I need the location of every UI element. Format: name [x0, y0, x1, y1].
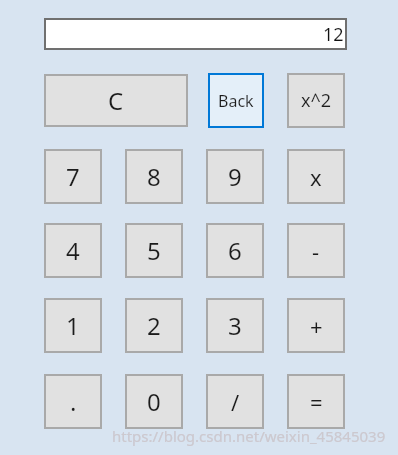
staticText: 0 [147, 385, 161, 418]
button[interactable]: + [287, 298, 345, 353]
button[interactable]: / [206, 374, 264, 429]
staticText: x^2 [301, 88, 332, 113]
staticText: 9 [228, 160, 242, 193]
button[interactable]: x [287, 149, 345, 204]
staticText: 12 [323, 22, 344, 47]
staticText: Back [218, 90, 254, 112]
staticText: + [310, 311, 323, 341]
staticText: 6 [228, 234, 242, 267]
button[interactable]: 9 [206, 149, 264, 204]
staticText: 2 [147, 309, 161, 342]
staticText: https://blog.csdn.net/weixin_45845039 [112, 426, 386, 446]
staticText: x [310, 162, 322, 192]
button[interactable]: 7 [44, 149, 102, 204]
button[interactable]: x^2 [287, 73, 345, 128]
staticText: / [231, 387, 240, 417]
button[interactable]: 1 [44, 298, 102, 353]
button[interactable]: 0 [125, 374, 183, 429]
staticText: C [108, 84, 124, 117]
staticText: 1 [66, 309, 80, 342]
staticText: - [312, 236, 320, 266]
button[interactable]: - [287, 223, 345, 278]
button[interactable]: 2 [125, 298, 183, 353]
staticText: 8 [147, 160, 161, 193]
button[interactable]: 4 [44, 223, 102, 278]
button[interactable]: 5 [125, 223, 183, 278]
button[interactable]: C [44, 74, 188, 127]
button[interactable]: 6 [206, 223, 264, 278]
button[interactable]: = [287, 374, 345, 429]
staticText: . [70, 385, 77, 418]
staticText: 5 [147, 234, 161, 267]
staticText: 7 [66, 160, 80, 193]
staticText: 3 [228, 309, 242, 342]
button[interactable]: Back [208, 73, 264, 128]
button[interactable]: 3 [206, 298, 264, 353]
staticText: = [310, 387, 323, 417]
staticText: 4 [66, 234, 80, 267]
button[interactable]: 12 [44, 18, 347, 50]
button[interactable]: 8 [125, 149, 183, 204]
button[interactable]: . [44, 374, 102, 429]
